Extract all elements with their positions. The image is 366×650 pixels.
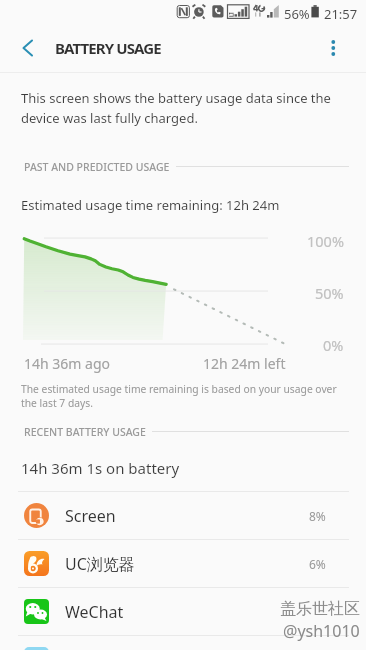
staticText: Screen [65,505,116,527]
staticText: RECENT BATTERY USAGE [24,425,146,437]
staticText: PAST AND PREDICTED USAGE [24,160,170,172]
staticText: 100% [307,231,344,251]
staticText: BATTERY USAGE [55,38,161,58]
staticText: 50% [315,283,344,303]
staticText: 12h 24m left [203,354,286,373]
button[interactable]: Back [0,24,48,72]
staticText: 21:57 [324,5,358,23]
staticText: WeChat [65,601,124,623]
staticText: 56% [284,5,310,23]
staticText: Estimated usage time remaining: 12h 24m [21,196,280,214]
staticText: 6% [309,556,326,572]
button[interactable] [0,636,366,650]
button[interactable]: More options [318,24,366,72]
staticText: @ysh1010 [283,620,360,642]
staticText: 0% [323,335,344,355]
staticText: 14h 36m ago [24,354,110,373]
staticText: 8% [309,508,326,524]
staticText: This screen shows the battery usage data… [21,89,331,127]
button[interactable]: WeChat [0,588,366,635]
button[interactable]: UC浏览器 [0,540,366,587]
staticText: UC浏览器 [65,553,135,575]
staticText: The estimated usage time remaining is ba… [21,382,337,410]
button[interactable]: Screen [0,492,366,539]
staticText: 盖乐世社区 [280,599,360,619]
staticText: 14h 36m 1s on battery [21,458,180,478]
